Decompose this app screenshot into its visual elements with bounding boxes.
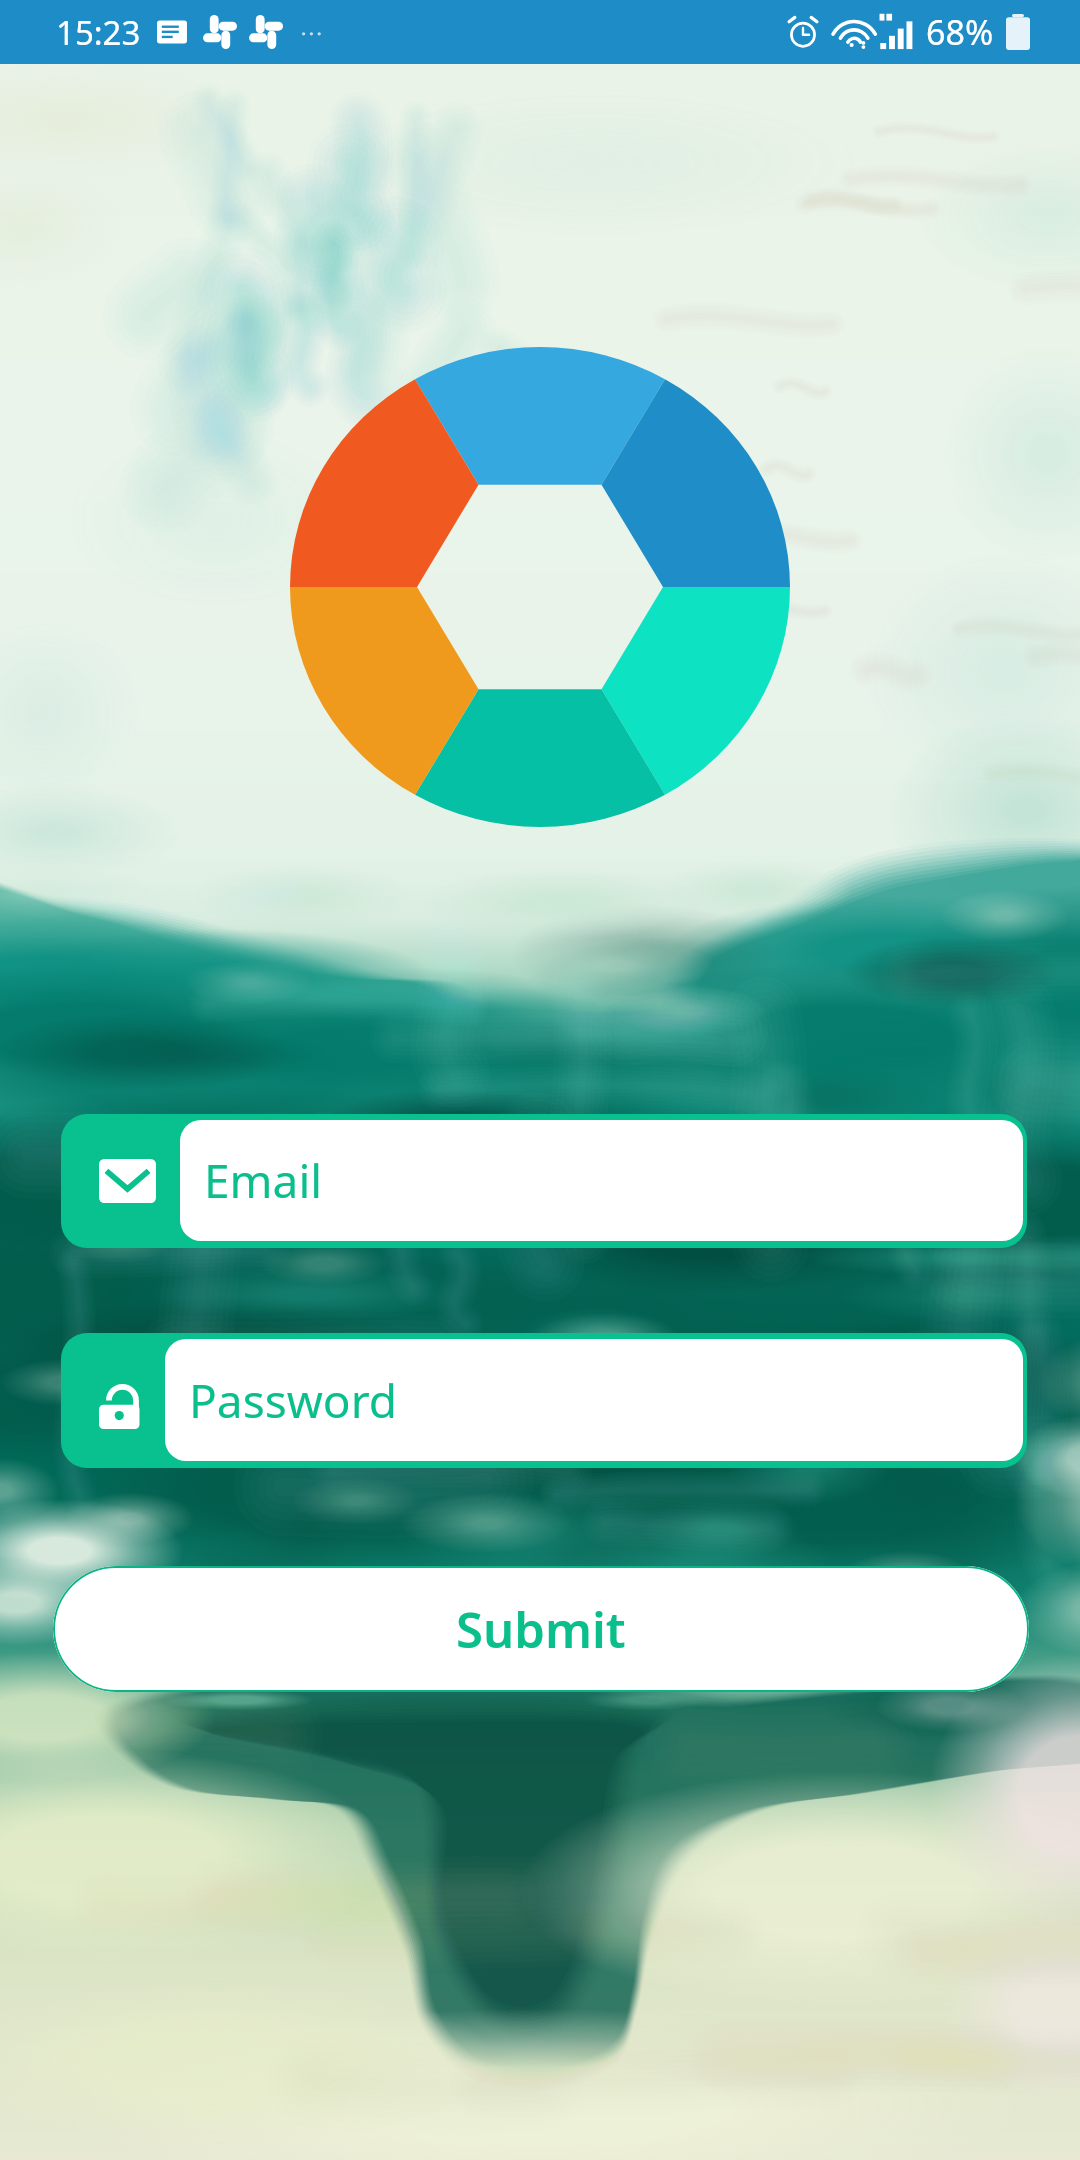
- staticText: Submit: [456, 1596, 626, 1663]
- other: Alarm: [786, 15, 820, 49]
- staticText: 68%: [926, 9, 994, 55]
- other: Email: [99, 1159, 156, 1203]
- other: Battery: [1006, 14, 1030, 50]
- button[interactable]: Password: [61, 1333, 1027, 1468]
- button[interactable]: Email: [61, 1114, 1027, 1248]
- other: Password: [99, 1373, 145, 1429]
- staticText: Email: [204, 1149, 323, 1212]
- staticText: 15:23: [56, 10, 141, 55]
- other: Wi-Fi: [834, 11, 876, 53]
- button[interactable]: Submit: [53, 1566, 1029, 1692]
- staticText: Password: [189, 1369, 398, 1432]
- other: Mobile signal: [878, 13, 916, 51]
